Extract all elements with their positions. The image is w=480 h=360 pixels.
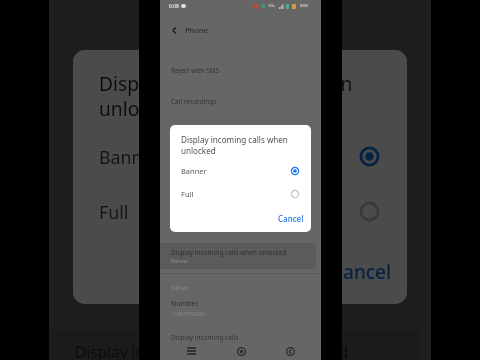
staticText: Display incoming calls when unlocked xyxy=(75,342,349,360)
button[interactable]: Reject with SMS xyxy=(160,61,321,79)
staticText: 60% xyxy=(300,3,309,9)
staticText: +19675551241 xyxy=(171,311,206,318)
button[interactable]: Call recordings xyxy=(160,92,321,110)
staticText: Number xyxy=(171,299,199,309)
button[interactable]: Home xyxy=(232,342,250,360)
staticText: Cancel xyxy=(278,213,304,224)
staticText: Full xyxy=(181,189,194,199)
button[interactable]: Display incoming calls when unlocked xyxy=(160,243,316,269)
button[interactable]: Full xyxy=(170,182,311,205)
button[interactable]: Recent apps xyxy=(182,342,200,360)
staticText: Display incoming calls when unlocked xyxy=(181,134,303,156)
button[interactable]: Back xyxy=(160,18,321,42)
button[interactable]: Banner xyxy=(73,129,407,184)
button[interactable]: Cancel xyxy=(307,252,407,292)
staticText: Call recordings xyxy=(171,97,217,106)
staticText: Display incoming calls when unlocked xyxy=(99,70,388,122)
staticText: Call recordings xyxy=(75,0,183,4)
button[interactable]: Full xyxy=(73,184,407,239)
staticText: Full xyxy=(99,200,129,224)
staticText: Display incoming calls xyxy=(171,333,239,342)
staticText: Banner xyxy=(99,145,160,169)
button[interactable]: Back xyxy=(168,24,181,37)
staticText: SIM pin xyxy=(171,285,189,292)
staticText: 6:08 xyxy=(169,3,179,10)
staticText: Display incoming calls when unlocked xyxy=(171,248,287,257)
button[interactable]: Call recordings xyxy=(49,0,431,15)
staticText: Banner xyxy=(171,258,189,265)
button[interactable]: Display incoming calls when unlocked xyxy=(49,330,419,360)
button[interactable]: Banner xyxy=(170,159,311,182)
staticText: Reject with SMS xyxy=(171,66,220,75)
button[interactable]: Cancel xyxy=(268,210,311,227)
staticText: Phone xyxy=(185,25,208,35)
button[interactable]: Back xyxy=(281,342,299,360)
staticText: Cancel xyxy=(331,259,392,285)
staticText: 10+ xyxy=(268,3,276,9)
staticText: Banner xyxy=(181,166,207,176)
